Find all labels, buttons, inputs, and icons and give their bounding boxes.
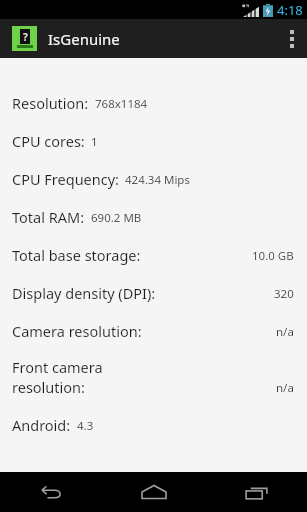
- staticText: 320: [274, 286, 294, 302]
- staticText: IsGenuine: [48, 29, 120, 49]
- button[interactable]: CPU cores:: [12, 124, 294, 162]
- staticText: 690.2 MB: [91, 210, 142, 226]
- button[interactable]: CPU Frequency:: [12, 162, 294, 200]
- button[interactable]: Back: [0, 472, 103, 512]
- button[interactable]: More options: [277, 19, 307, 58]
- button[interactable]: Camera resolution:: [12, 314, 294, 352]
- button[interactable]: Front camera resolution:: [12, 352, 294, 408]
- button[interactable]: Total RAM:: [12, 200, 294, 238]
- staticText: 10.0 GB: [252, 248, 294, 264]
- staticText: Front camera resolution:: [12, 357, 103, 397]
- staticText: n/a: [276, 380, 294, 396]
- button[interactable]: Recent apps: [205, 472, 307, 512]
- button[interactable]: Android:: [12, 408, 294, 446]
- staticText: 424.34 Mips: [125, 172, 190, 188]
- staticText: CPU cores:: [12, 131, 85, 151]
- button[interactable]: Total base storage:: [12, 238, 294, 276]
- button[interactable]: Display density (DPI):: [12, 276, 294, 314]
- staticText: 768x1184: [95, 96, 148, 112]
- staticText: Camera resolution:: [12, 321, 142, 341]
- button[interactable]: Home: [103, 472, 205, 512]
- staticText: Display density (DPI):: [12, 283, 156, 303]
- staticText: n/a: [276, 324, 294, 340]
- staticText: Total base storage:: [12, 245, 141, 265]
- staticText: Android:: [12, 415, 71, 435]
- staticText: Total RAM:: [12, 207, 85, 227]
- staticText: 1: [91, 134, 98, 150]
- staticText: 4:18: [277, 1, 303, 19]
- button[interactable]: Resolution:: [12, 86, 294, 124]
- staticText: ?: [23, 30, 28, 44]
- staticText: Resolution:: [12, 93, 89, 113]
- staticText: CPU Frequency:: [12, 169, 119, 189]
- staticText: 4.3: [77, 418, 94, 434]
